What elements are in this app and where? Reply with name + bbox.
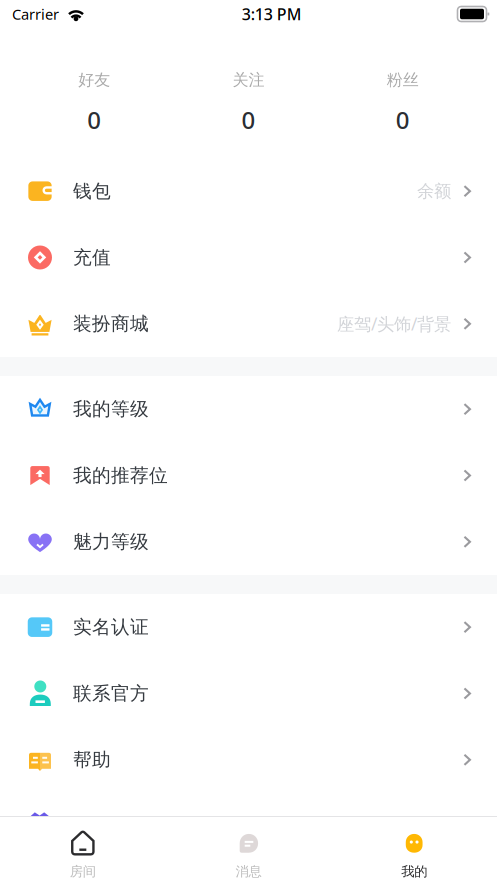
staticText: 帮助 [73, 748, 111, 771]
staticText: 0 [87, 104, 101, 136]
button[interactable]: 关于我们 [0, 793, 497, 859]
button[interactable]: 我的等级 [0, 376, 497, 442]
button[interactable]: 魅力等级 [0, 509, 497, 575]
button[interactable]: 帮助 [0, 727, 497, 793]
staticText: 0 [396, 104, 410, 136]
button[interactable]: 消息 [166, 817, 331, 883]
staticText: 充值 [73, 246, 111, 269]
button[interactable]: 我的 [331, 817, 497, 883]
button[interactable]: 装扮商城 [0, 291, 497, 357]
staticText: 0 [241, 104, 255, 136]
staticText: 装扮商城 [73, 312, 149, 335]
staticText: 粉丝 [387, 70, 419, 90]
staticText: 联系官方 [73, 682, 149, 705]
staticText: 消息 [235, 863, 261, 880]
staticText: 实名认证 [73, 616, 149, 639]
button[interactable]: 实名认证 [0, 594, 497, 660]
staticText: 房间 [70, 863, 96, 880]
staticText: 我的 [401, 863, 427, 880]
staticText: 座驾/头饰/背景 [337, 312, 451, 335]
button[interactable]: 房间 [0, 817, 166, 883]
staticText: 我的等级 [73, 398, 149, 421]
staticText: 关于我们 [73, 815, 149, 838]
staticText: 我的推荐位 [73, 464, 168, 487]
staticText: 钱包 [73, 180, 111, 203]
staticText: 3:13 PM [242, 3, 302, 25]
staticText: 关注 [232, 70, 264, 90]
button[interactable]: 联系官方 [0, 660, 497, 727]
button[interactable]: 我的推荐位 [0, 442, 497, 509]
staticText: Carrier [12, 4, 59, 24]
staticText: 余额 [417, 180, 451, 202]
staticText: 魅力等级 [73, 530, 149, 553]
button[interactable]: 钱包 [0, 158, 497, 224]
staticText: 好友 [78, 70, 110, 90]
button[interactable]: 充值 [0, 224, 497, 291]
